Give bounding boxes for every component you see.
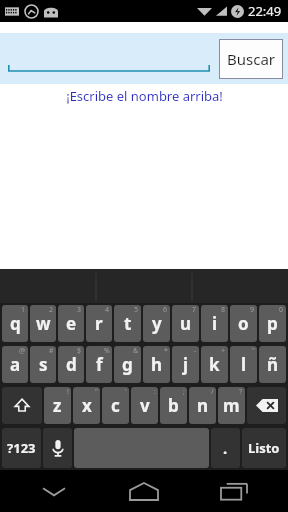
staticText: ' [125, 387, 127, 397]
button[interactable]: u [172, 305, 199, 342]
button[interactable]: Shift [2, 387, 42, 424]
button[interactable]: Home [108, 470, 180, 512]
button[interactable]: y [143, 305, 170, 342]
staticText: ñ [267, 353, 279, 376]
staticText: o [238, 312, 249, 335]
button[interactable]: h [143, 346, 170, 383]
button[interactable]: v [131, 387, 158, 424]
staticText: b [168, 394, 179, 417]
button[interactable]: k [201, 346, 228, 383]
button[interactable]: d [58, 346, 84, 383]
staticText: 8 [221, 305, 226, 315]
staticText: ¡Escribe el nombre arriba! [66, 87, 223, 105]
staticText: 9 [250, 305, 255, 315]
button[interactable]: . [211, 428, 240, 468]
staticText: c [111, 394, 120, 417]
staticText: z [53, 394, 62, 417]
staticText: & [133, 346, 139, 356]
staticText: : [154, 387, 156, 397]
staticText: f [96, 353, 103, 376]
staticText: . [223, 438, 228, 458]
staticText: i [212, 312, 218, 335]
staticText: k [209, 353, 220, 376]
button[interactable]: ?123 [2, 428, 41, 468]
button[interactable]: r [86, 305, 112, 342]
staticText: # [49, 346, 54, 356]
button[interactable]: c [102, 387, 129, 424]
button[interactable]: q [2, 305, 28, 342]
button[interactable] [8, 46, 210, 72]
button[interactable]: x [73, 387, 100, 424]
staticText: ?123 [7, 439, 36, 457]
staticText: h [151, 353, 163, 376]
staticText: y [152, 312, 162, 335]
staticText: d [66, 353, 77, 376]
button[interactable]: j [172, 346, 199, 383]
staticText: t [124, 312, 132, 335]
button[interactable]: l [230, 346, 257, 383]
staticText: $ [77, 346, 82, 356]
staticText: 2 [49, 305, 54, 315]
button[interactable]: f [86, 346, 112, 383]
staticText: 3 [77, 305, 82, 315]
button[interactable]: m [218, 387, 245, 424]
staticText: ! [67, 387, 69, 397]
staticText: a [10, 353, 21, 376]
staticText: + [221, 346, 226, 356]
button[interactable]: o [230, 305, 257, 342]
staticText: % [104, 346, 110, 356]
staticText: * [164, 346, 168, 356]
staticText: " [95, 387, 98, 397]
staticText: q [10, 312, 21, 335]
staticText: w [36, 312, 51, 335]
button[interactable]: e [58, 305, 84, 342]
button[interactable]: a [2, 346, 28, 383]
staticText: 0 [279, 305, 284, 315]
staticText: n [197, 394, 209, 417]
button[interactable]: n [189, 387, 216, 424]
staticText: 22:49 [248, 2, 282, 20]
staticText: ; [183, 387, 185, 397]
staticText: l [241, 353, 247, 376]
staticText: @ [19, 346, 26, 356]
staticText: u [180, 312, 192, 335]
staticText: r [95, 312, 103, 335]
staticText: - [194, 346, 197, 356]
button[interactable]: Back [18, 470, 90, 512]
button[interactable]: g [114, 346, 141, 383]
staticText: ? [239, 387, 243, 397]
staticText: 1 [21, 305, 26, 315]
staticText: v [140, 394, 150, 417]
button[interactable]: Voice input [43, 428, 72, 468]
staticText: Listo [248, 439, 280, 457]
button[interactable]: Buscar [219, 39, 283, 79]
button[interactable]: b [160, 387, 187, 424]
button[interactable]: ñ [259, 346, 286, 383]
staticText: 4 [105, 305, 110, 315]
staticText: p [267, 312, 278, 335]
button[interactable]: p [259, 305, 286, 342]
button[interactable]: s [30, 346, 56, 383]
staticText: 5 [134, 305, 139, 315]
button[interactable]: Backspace [247, 387, 286, 424]
staticText: m [223, 394, 240, 417]
staticText: s [39, 353, 48, 376]
button[interactable]: w [30, 305, 56, 342]
staticText: j [183, 353, 189, 376]
staticText: g [122, 353, 133, 376]
staticText: e [66, 312, 77, 335]
staticText: x [82, 394, 92, 417]
button[interactable]: Listo [242, 428, 286, 468]
staticText: 6 [163, 305, 168, 315]
staticText: 7 [192, 305, 197, 315]
staticText: / [211, 387, 214, 397]
button[interactable]: t [114, 305, 141, 342]
staticText: " [252, 346, 255, 356]
button[interactable]: Recent apps [198, 470, 270, 512]
button[interactable]: z [44, 387, 71, 424]
button[interactable]: i [201, 305, 228, 342]
staticText: Buscar [227, 49, 276, 69]
